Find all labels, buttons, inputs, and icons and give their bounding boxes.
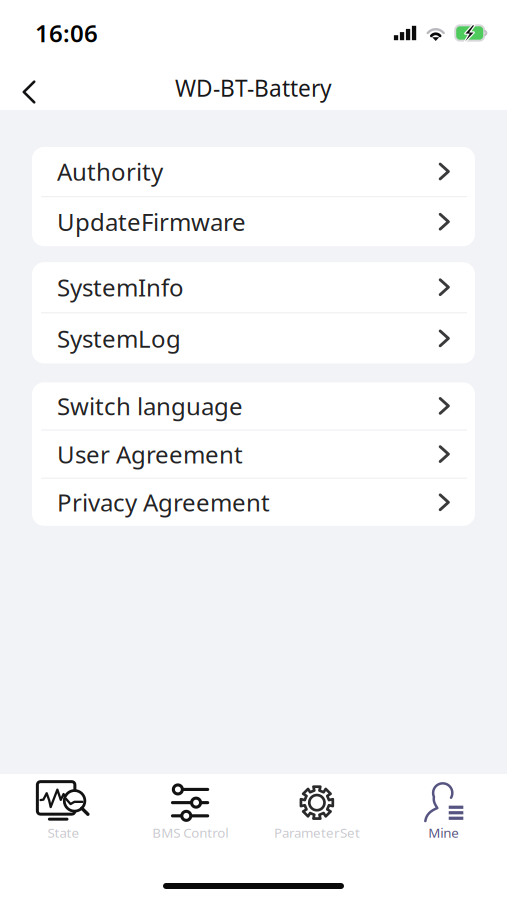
button[interactable]: Mine — [380, 774, 507, 840]
staticText: 16:06 — [35, 17, 98, 49]
staticText: Authority — [57, 156, 163, 187]
button[interactable]: Switch language — [32, 382, 475, 429]
staticText: Privacy Agreement — [57, 486, 270, 518]
button[interactable]: State — [0, 774, 127, 840]
staticText: Switch language — [57, 390, 243, 422]
staticText: User Agreement — [57, 438, 243, 470]
staticText: State — [47, 824, 79, 841]
staticText: WD-BT-Battery — [175, 73, 332, 103]
button[interactable]: ParameterSet — [253, 774, 380, 840]
staticText: Mine — [428, 824, 459, 841]
button[interactable]: Privacy Agreement — [32, 479, 475, 526]
button[interactable]: SystemInfo — [32, 262, 475, 312]
button[interactable]: SystemLog — [32, 313, 475, 363]
button[interactable]: Back — [8, 67, 50, 109]
staticText: SystemLog — [57, 322, 181, 354]
button[interactable]: Authority — [32, 147, 475, 196]
staticText: ParameterSet — [274, 824, 360, 841]
button[interactable]: BMS Control — [127, 774, 254, 840]
staticText: UpdateFirmware — [57, 206, 246, 238]
staticText: BMS Control — [152, 824, 228, 841]
button[interactable]: User Agreement — [32, 431, 475, 478]
button[interactable]: UpdateFirmware — [32, 197, 475, 246]
staticText: SystemInfo — [57, 271, 184, 303]
